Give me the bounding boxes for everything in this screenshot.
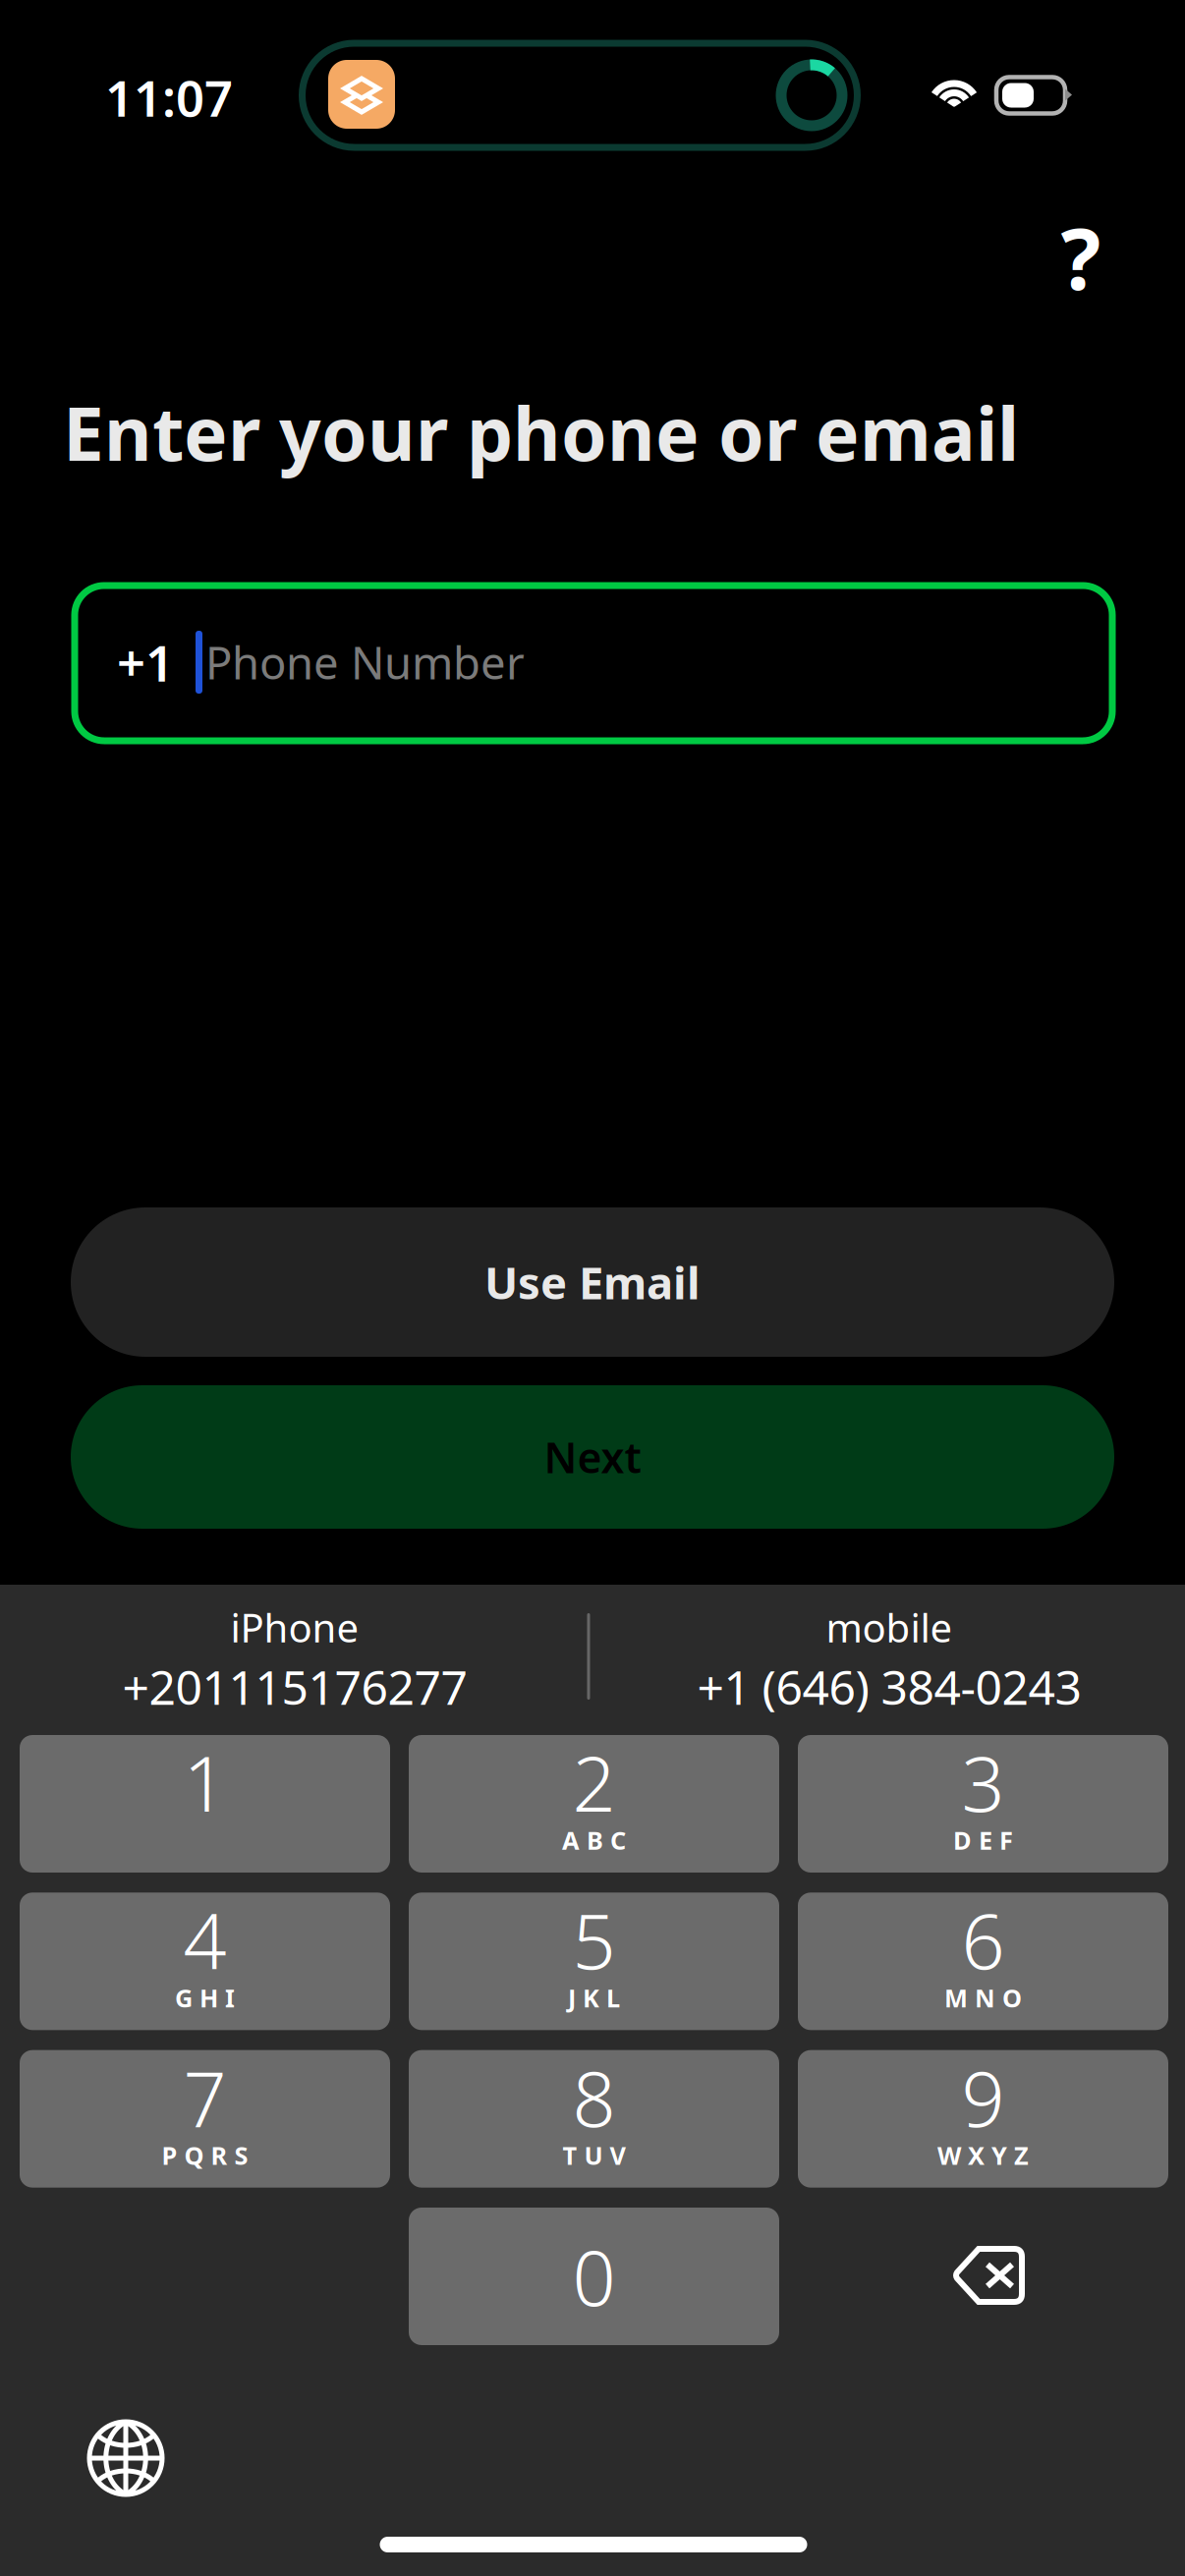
button[interactable]: 3 <box>798 1735 1168 1873</box>
button[interactable]: 1 <box>20 1735 390 1873</box>
button[interactable]: iPhone <box>20 1605 570 1713</box>
button[interactable]: 8 <box>409 2050 779 2188</box>
staticText: D E F <box>953 1824 1013 1857</box>
staticText: iPhone <box>230 1601 359 1653</box>
staticText: 3 <box>961 1732 1005 1833</box>
staticText: Phone Number <box>205 633 525 692</box>
button[interactable]: Next keyboard <box>72 2404 180 2512</box>
staticText: +201115176277 <box>122 1655 467 1718</box>
button[interactable]: mobile <box>614 1605 1164 1713</box>
staticText: 6 <box>961 1889 1005 1990</box>
button[interactable]: Next <box>71 1385 1114 1529</box>
button[interactable]: Help <box>1027 203 1135 311</box>
staticText: W X Y Z <box>937 2139 1029 2172</box>
staticText: T U V <box>563 2139 625 2172</box>
staticText: 2 <box>572 1732 616 1833</box>
staticText: 11:07 <box>105 64 233 130</box>
staticText: Next <box>544 1429 641 1485</box>
staticText: +1 <box>117 629 174 695</box>
button[interactable]: 4 <box>20 1893 390 2030</box>
staticText: +1 (646) 384-0243 <box>697 1655 1081 1718</box>
staticText: 5 <box>572 1889 616 1990</box>
staticText: P Q R S <box>162 2139 248 2172</box>
button[interactable]: 0 <box>409 2208 779 2345</box>
button[interactable]: Delete <box>891 2207 1088 2344</box>
staticText: Use Email <box>484 1253 701 1312</box>
staticText: 7 <box>183 2047 226 2148</box>
staticText: 0 <box>572 2226 616 2327</box>
staticText: Enter your phone or email <box>63 384 1019 481</box>
button[interactable]: 9 <box>798 2050 1168 2188</box>
button[interactable]: 6 <box>798 1893 1168 2030</box>
staticText: 4 <box>183 1889 226 1990</box>
button[interactable]: 5 <box>409 1893 779 2030</box>
button[interactable]: 2 <box>409 1735 779 1873</box>
staticText: M N O <box>944 1981 1022 2014</box>
button[interactable]: 7 <box>20 2050 390 2188</box>
button[interactable]: Use Email <box>71 1207 1114 1357</box>
staticText: G H I <box>175 1981 235 2014</box>
staticText: 8 <box>572 2047 616 2148</box>
staticText: J K L <box>568 1981 620 2014</box>
staticText: mobile <box>826 1601 953 1653</box>
staticText: 9 <box>961 2047 1005 2148</box>
staticText: A B C <box>562 1824 626 1857</box>
staticText: 1 <box>183 1732 226 1833</box>
staticText: ? <box>1061 202 1101 313</box>
